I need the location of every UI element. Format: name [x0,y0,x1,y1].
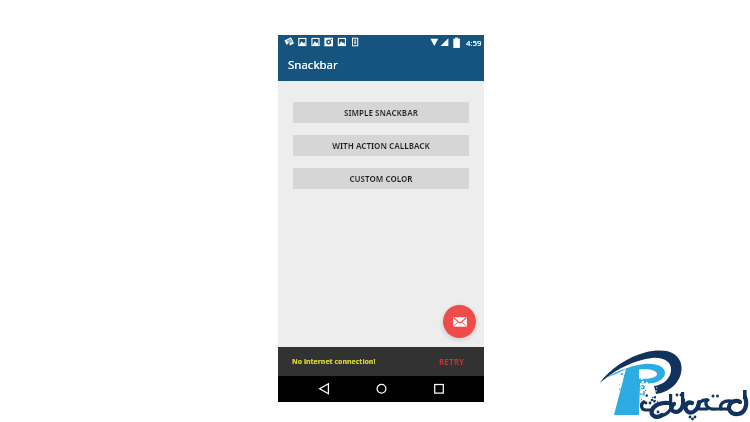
staticText: WITH ACTION CALLBACK [332,140,430,151]
button[interactable]: WITH ACTION CALLBACK [293,135,469,156]
staticText: CUSTOM COLOR [349,173,413,184]
staticText: SIMPLE SNACKBAR [344,107,418,118]
button[interactable]: RETRY [437,354,467,369]
button[interactable]: SIMPLE SNACKBAR [293,102,469,123]
staticText: RETRY [439,356,465,367]
button[interactable]: Home [352,376,410,402]
staticText: No internet connection! [292,357,376,367]
staticText: Snackbar [288,57,338,73]
button[interactable]: Recent apps [410,376,484,402]
staticText: 4:59 [466,38,482,49]
button[interactable]: Compose message [443,305,476,338]
button[interactable]: Back [278,376,352,402]
button[interactable]: CUSTOM COLOR [293,168,469,189]
